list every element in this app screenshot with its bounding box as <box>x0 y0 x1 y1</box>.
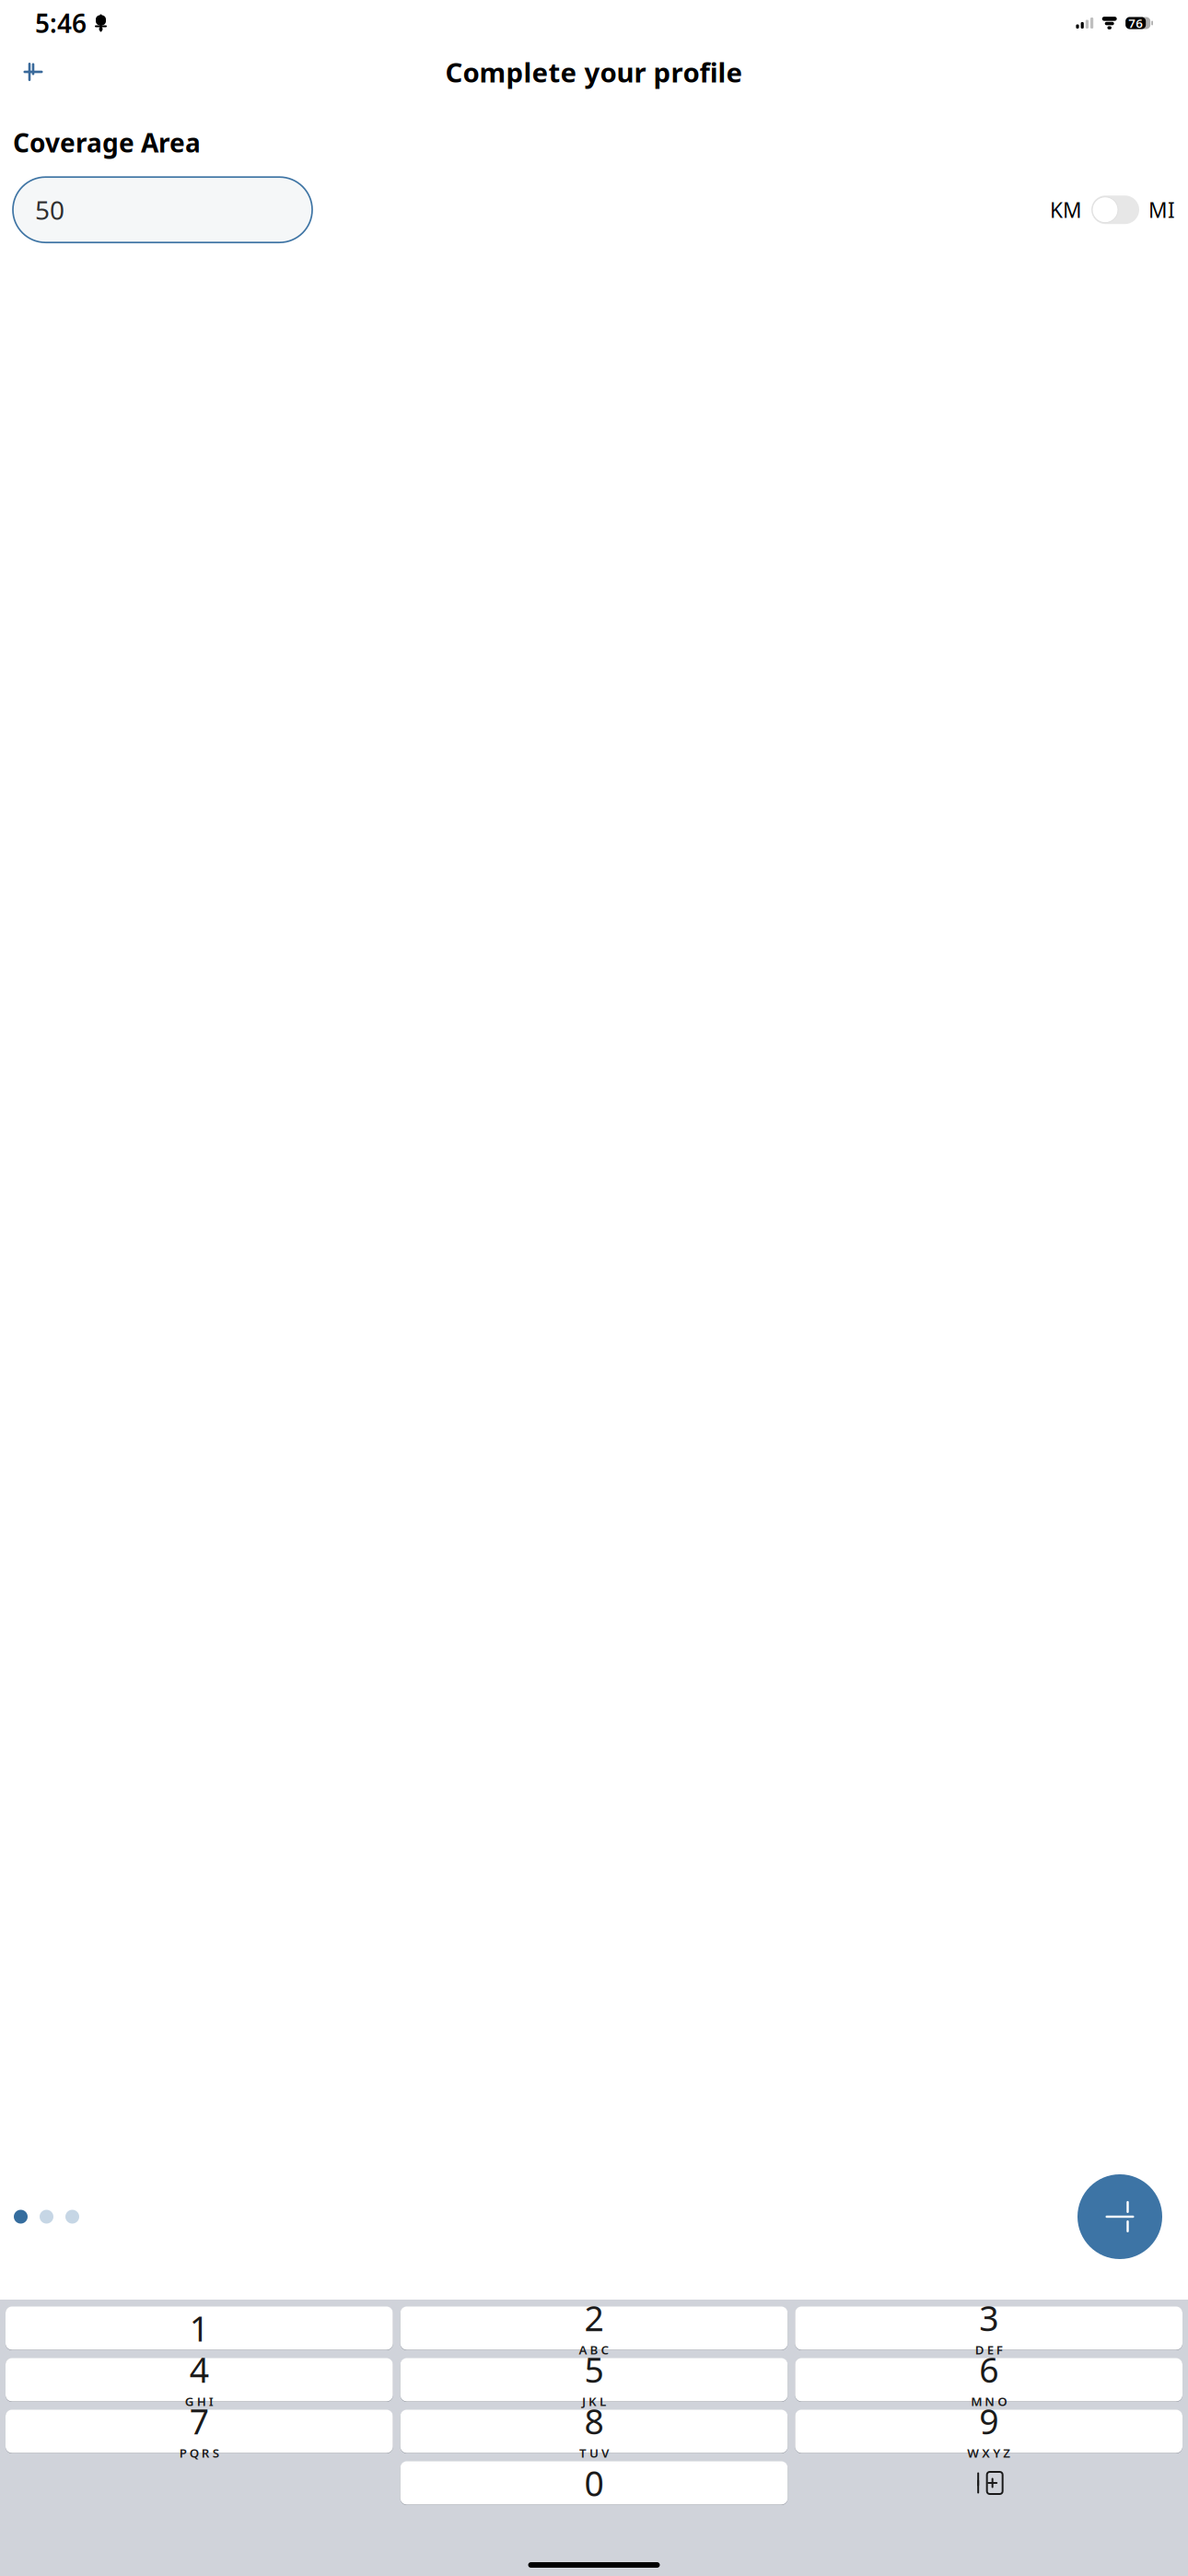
staticText: 2 <box>584 2295 604 2341</box>
staticText: 5 <box>584 2347 604 2392</box>
staticText: M N O <box>971 2393 1007 2409</box>
staticText: W X Y Z <box>967 2445 1010 2461</box>
staticText: 7 <box>190 2398 209 2444</box>
button[interactable]: Back <box>13 52 53 92</box>
staticText: MI <box>1148 196 1175 224</box>
staticText: A B C <box>579 2341 609 2358</box>
button[interactable]: 0 <box>400 2461 788 2505</box>
staticText: KM <box>1050 196 1082 224</box>
button[interactable]: 4 <box>6 2358 393 2402</box>
staticText: Complete your profile <box>445 54 743 90</box>
button[interactable]: 1 <box>6 2306 393 2350</box>
staticText: 0 <box>584 2460 604 2506</box>
staticText: T U V <box>579 2445 609 2461</box>
staticText: 76 <box>1128 15 1143 31</box>
staticText: 9 <box>979 2398 998 2444</box>
button[interactable]: Next <box>1077 2174 1162 2259</box>
button[interactable]: 2 <box>400 2306 788 2350</box>
button[interactable]: 3 <box>795 2306 1182 2350</box>
staticText: 3 <box>979 2295 998 2341</box>
staticText: 1 <box>190 2305 209 2351</box>
staticText: Coverage Area <box>13 125 201 160</box>
button[interactable]: Delete <box>795 2461 1182 2505</box>
staticText: 8 <box>584 2398 604 2444</box>
staticText: 50 <box>35 193 64 227</box>
staticText: 6 <box>979 2347 998 2392</box>
staticText: P Q R S <box>179 2445 219 2461</box>
button[interactable]: 8 <box>400 2409 788 2453</box>
button[interactable]: 9 <box>795 2409 1182 2453</box>
button[interactable]: 7 <box>6 2409 393 2453</box>
button[interactable]: Toggle kilometers or miles <box>1091 196 1139 224</box>
button[interactable]: 5 <box>400 2358 788 2402</box>
button[interactable]: 6 <box>795 2358 1182 2402</box>
staticText: G H I <box>185 2393 213 2409</box>
button[interactable]: 50 <box>13 177 312 242</box>
staticText: 5:46 <box>35 6 87 40</box>
staticText: 4 <box>190 2347 209 2392</box>
staticText: D E F <box>975 2341 1003 2358</box>
staticText: J K L <box>582 2393 606 2409</box>
